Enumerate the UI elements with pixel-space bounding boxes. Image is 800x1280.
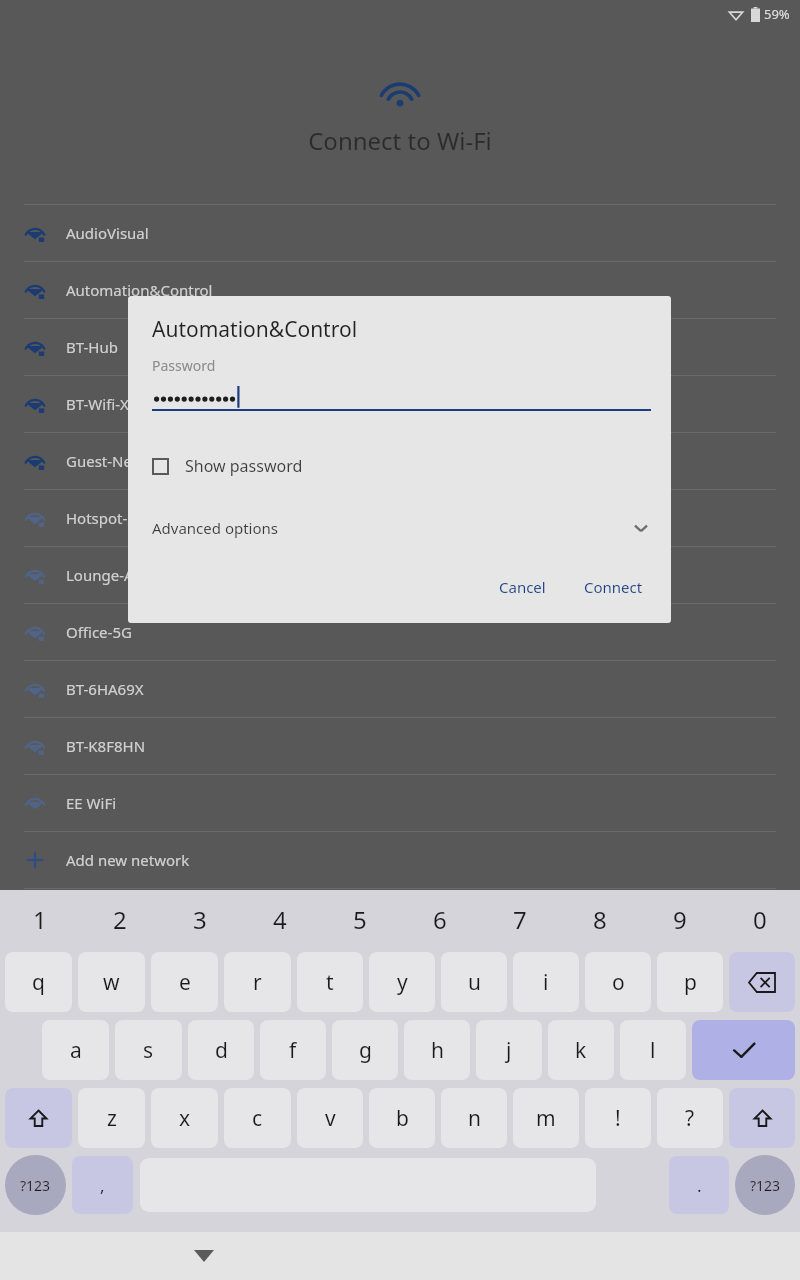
button[interactable]: BT-Wifi-X — [24, 376, 776, 432]
staticText: t — [326, 968, 334, 997]
button[interactable]: 6 — [400, 890, 480, 948]
button[interactable]: p — [657, 952, 723, 1012]
staticText: s — [143, 1036, 154, 1065]
button[interactable]: w — [78, 952, 145, 1012]
button[interactable]: Shift — [5, 1088, 72, 1148]
staticText: Connect to Wi-Fi — [0, 124, 800, 157]
staticText: . — [697, 1174, 702, 1197]
button[interactable]: , — [72, 1156, 133, 1214]
button[interactable]: u — [441, 952, 507, 1012]
staticText: 7 — [513, 903, 527, 936]
staticText: o — [612, 968, 625, 997]
staticText: 9 — [673, 903, 687, 936]
button[interactable]: n — [441, 1088, 507, 1148]
button[interactable]: 8 — [560, 890, 640, 948]
button[interactable]: e — [151, 952, 218, 1012]
button[interactable]: EE WiFi — [24, 775, 776, 831]
button[interactable]: BT-K8F8HN — [24, 718, 776, 774]
staticText: ?123 — [750, 1176, 781, 1195]
staticText: Automation&Control — [66, 280, 213, 300]
staticText: Guest-Net — [66, 451, 138, 471]
staticText: n — [468, 1104, 481, 1133]
button[interactable]: a — [42, 1020, 109, 1080]
staticText: Add new network — [66, 850, 190, 870]
button[interactable]: ?123 — [735, 1155, 795, 1215]
staticText: 3 — [193, 903, 207, 936]
button[interactable]: Hotspot-22 — [24, 490, 776, 546]
staticText: m — [536, 1104, 556, 1133]
button[interactable]: ? — [657, 1088, 723, 1148]
button[interactable]: BT-Hub — [24, 319, 776, 375]
staticText: ! — [615, 1104, 621, 1133]
button[interactable]: Hide keyboard — [180, 1232, 228, 1280]
staticText: z — [107, 1104, 117, 1133]
staticText: BT-K8F8HN — [66, 736, 146, 756]
button[interactable]: Connect — [576, 571, 651, 603]
button[interactable]: Guest-Net — [24, 433, 776, 489]
staticText: e — [179, 968, 191, 997]
button[interactable]: BT-6HA69X — [24, 661, 776, 717]
button[interactable]: c — [224, 1088, 291, 1148]
button[interactable]: 0 — [720, 890, 800, 948]
button[interactable]: i — [513, 952, 579, 1012]
button[interactable]: t — [297, 952, 363, 1012]
button[interactable]: Enter — [692, 1020, 795, 1080]
staticText: Show password — [185, 455, 303, 477]
button[interactable]: h — [404, 1020, 470, 1080]
staticText: Cancel — [499, 577, 546, 597]
button[interactable]: Automation&Control — [24, 262, 776, 318]
staticText: 4 — [273, 903, 287, 936]
button[interactable]: r — [224, 952, 291, 1012]
button[interactable]: l — [620, 1020, 686, 1080]
staticText: BT-Wifi-X — [66, 394, 129, 414]
button[interactable]: Lounge-AP — [24, 547, 776, 603]
button[interactable]: b — [369, 1088, 435, 1148]
staticText: 0 — [753, 903, 767, 936]
button[interactable]: j — [476, 1020, 542, 1080]
staticText: ?123 — [20, 1176, 51, 1195]
staticText: l — [650, 1036, 656, 1065]
button[interactable]: f — [260, 1020, 326, 1080]
button[interactable]: AudioVisual — [24, 205, 776, 261]
button[interactable]: 9 — [640, 890, 720, 948]
button[interactable]: ! — [585, 1088, 651, 1148]
button[interactable]: Add new network — [24, 832, 776, 888]
button[interactable]: g — [332, 1020, 398, 1080]
button[interactable]: Backspace — [729, 952, 795, 1012]
staticText: 5 — [353, 903, 367, 936]
button[interactable]: v — [297, 1088, 363, 1148]
button[interactable]: s — [115, 1020, 182, 1080]
button[interactable]: q — [5, 952, 72, 1012]
button[interactable]: 1 — [0, 890, 80, 948]
button[interactable]: d — [188, 1020, 254, 1080]
button[interactable]: . — [669, 1156, 729, 1214]
staticText: f — [289, 1036, 297, 1065]
staticText: j — [506, 1036, 512, 1065]
button[interactable]: z — [78, 1088, 145, 1148]
button[interactable]: k — [548, 1020, 614, 1080]
button[interactable]: ?123 — [5, 1155, 66, 1215]
staticText: BT-Hub — [66, 337, 118, 357]
button[interactable]: Office-5G — [24, 604, 776, 660]
button[interactable]: Advanced options — [152, 515, 651, 541]
staticText: Hotspot-22 — [66, 508, 145, 528]
staticText: i — [543, 968, 549, 997]
button[interactable]: Shift — [729, 1088, 795, 1148]
button[interactable]: 4 — [240, 890, 320, 948]
button[interactable]: o — [585, 952, 651, 1012]
staticText: Lounge-AP — [66, 565, 143, 585]
staticText: v — [325, 1104, 336, 1133]
button[interactable]: 2 — [80, 890, 160, 948]
staticText: AudioVisual — [66, 223, 149, 243]
button[interactable]: 3 — [160, 890, 240, 948]
other: Expand advanced options — [631, 518, 651, 538]
button[interactable]: x — [151, 1088, 218, 1148]
button[interactable]: m — [513, 1088, 579, 1148]
staticText: q — [32, 968, 45, 997]
button[interactable]: 7 — [480, 890, 560, 948]
button[interactable]: Cancel — [491, 571, 554, 603]
button[interactable]: y — [369, 952, 435, 1012]
button[interactable]: 5 — [320, 890, 400, 948]
button[interactable]: Show password — [152, 455, 303, 477]
